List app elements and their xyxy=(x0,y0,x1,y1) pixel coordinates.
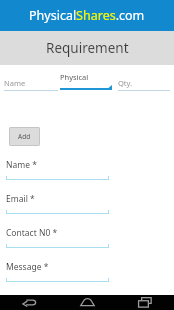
staticText: Email * xyxy=(6,193,35,205)
button[interactable]: Email * xyxy=(6,193,174,227)
staticText: PhysicalShares.com xyxy=(29,7,145,24)
staticText: Physical xyxy=(60,72,89,82)
button[interactable]: Physical xyxy=(60,72,112,90)
staticText: Name * xyxy=(6,159,37,171)
staticText: Qty. xyxy=(118,78,133,88)
button[interactable]: Home xyxy=(58,295,116,310)
staticText: Requirement xyxy=(46,39,129,57)
staticText: Add xyxy=(18,132,31,141)
button[interactable]: Add xyxy=(9,127,40,146)
button[interactable]: Name xyxy=(4,78,58,91)
button[interactable]: Qty. xyxy=(118,78,170,91)
button[interactable]: Message * xyxy=(6,261,174,295)
staticText: Name xyxy=(4,78,26,88)
button[interactable]: Contact N0 * xyxy=(6,227,174,261)
button[interactable]: Back xyxy=(0,295,58,310)
staticText: Message * xyxy=(6,261,49,273)
staticText: Contact N0 * xyxy=(6,227,58,239)
button[interactable]: PhysicalShares.com xyxy=(0,0,174,31)
button[interactable]: Name * xyxy=(6,159,174,193)
button[interactable]: Recent apps xyxy=(116,295,174,310)
